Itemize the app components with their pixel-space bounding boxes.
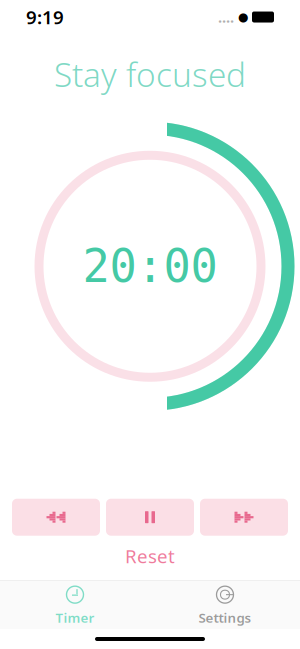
staticText: 20:00 [82, 240, 217, 292]
staticText: Settings [198, 609, 251, 626]
button[interactable]: Settings [150, 578, 300, 632]
staticText: Timer [55, 609, 94, 626]
button[interactable]: Reset [109, 536, 191, 568]
staticText: 9:19 [26, 5, 64, 29]
button[interactable]: Pause [106, 499, 194, 536]
staticText: Stay focused [54, 52, 246, 96]
button[interactable]: Fast forward [200, 499, 288, 536]
staticText: ● [238, 10, 248, 24]
staticText: Reset [125, 544, 175, 568]
button[interactable]: Timer [0, 578, 150, 632]
button[interactable]: Rewind [12, 499, 100, 536]
staticText: .... [218, 7, 234, 27]
